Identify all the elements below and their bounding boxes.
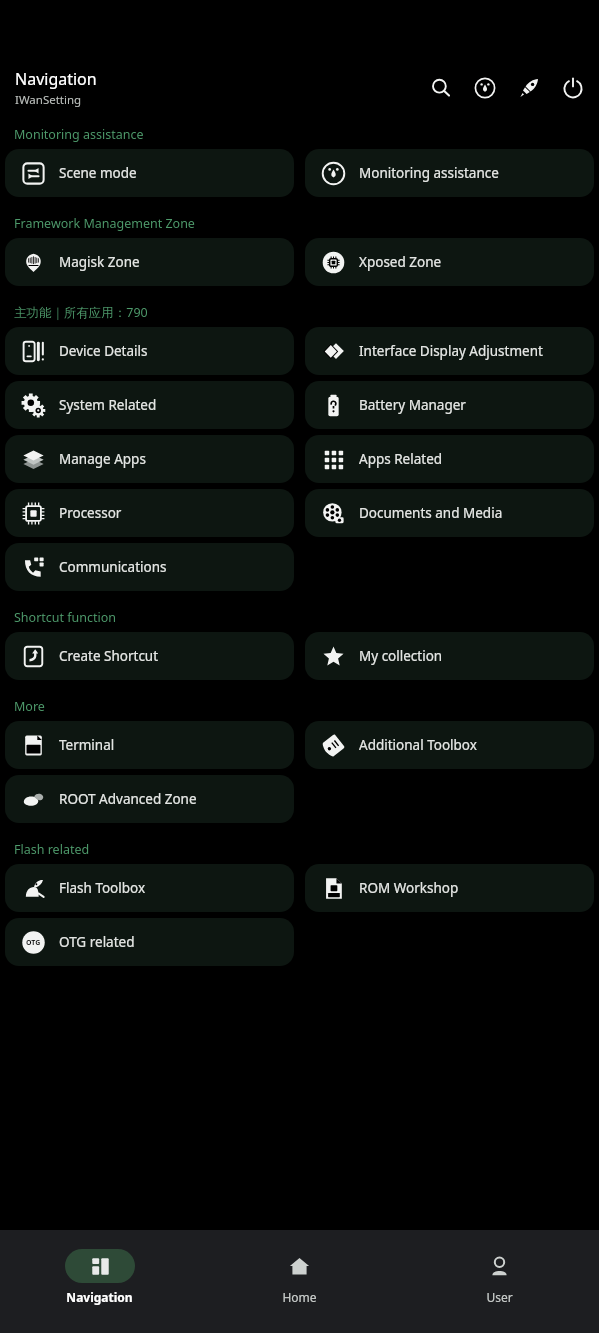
staticText: Monitoring assistance xyxy=(14,126,144,143)
staticText: Navigation xyxy=(66,1289,133,1305)
staticText: Battery Manager xyxy=(359,396,466,414)
staticText: Monitoring assistance xyxy=(359,164,499,182)
button[interactable]: ROM Workshop xyxy=(305,864,594,912)
button[interactable]: Magisk Zone xyxy=(5,238,294,286)
staticText: ROM Workshop xyxy=(359,879,459,897)
staticText: More xyxy=(14,698,45,715)
button[interactable]: Processor xyxy=(5,489,294,537)
button[interactable]: Performance xyxy=(463,66,507,110)
staticText: Manage Apps xyxy=(59,450,146,468)
staticText: Shortcut function xyxy=(14,609,117,626)
button[interactable]: Create Shortcut xyxy=(5,632,294,680)
button[interactable]: Flash Toolbox xyxy=(5,864,294,912)
staticText: IWanSetting xyxy=(15,92,82,108)
staticText: OTG xyxy=(26,938,41,948)
button[interactable]: Search xyxy=(419,66,463,110)
staticText: Communications xyxy=(59,558,167,576)
staticText: Apps Related xyxy=(359,450,443,468)
button[interactable]: System Related xyxy=(5,381,294,429)
button[interactable]: ROOT Advanced Zone xyxy=(5,775,294,823)
staticText: Device Details xyxy=(59,342,148,360)
staticText: ROOT Advanced Zone xyxy=(59,790,197,808)
button[interactable]: Xposed Zone xyxy=(305,238,594,286)
staticText: Home xyxy=(282,1289,317,1305)
button[interactable]: Scene mode xyxy=(5,149,294,197)
staticText: System Related xyxy=(59,396,157,414)
button[interactable]: Battery Manager xyxy=(305,381,594,429)
button[interactable]: My collection xyxy=(305,632,594,680)
button[interactable]: Interface Display Adjustment xyxy=(305,327,594,375)
staticText: Additional Toolbox xyxy=(359,736,477,754)
staticText: 主功能｜所有应用：790 xyxy=(14,304,148,321)
staticText: Documents and Media xyxy=(359,504,503,522)
button[interactable]: Boost xyxy=(507,66,551,110)
staticText: Scene mode xyxy=(59,164,137,182)
staticText: Framework Management Zone xyxy=(14,215,195,232)
staticText: Flash related xyxy=(14,841,90,858)
button[interactable]: Apps Related xyxy=(305,435,594,483)
staticText: Flash Toolbox xyxy=(59,879,146,897)
button[interactable]: Device Details xyxy=(5,327,294,375)
button[interactable]: User xyxy=(399,1230,599,1333)
button[interactable]: Home xyxy=(199,1230,399,1333)
staticText: Create Shortcut xyxy=(59,647,159,665)
button[interactable]: Power xyxy=(551,66,595,110)
button[interactable]: Manage Apps xyxy=(5,435,294,483)
staticText: My collection xyxy=(359,647,443,665)
staticText: Interface Display Adjustment xyxy=(359,342,543,360)
staticText: OTG related xyxy=(59,933,135,951)
staticText: Processor xyxy=(59,504,122,522)
staticText: Terminal xyxy=(59,736,115,754)
staticText: Navigation xyxy=(15,68,97,90)
button[interactable]: OTG xyxy=(5,918,294,966)
staticText: Xposed Zone xyxy=(359,253,442,271)
button[interactable]: Additional Toolbox xyxy=(305,721,594,769)
button[interactable]: Terminal xyxy=(5,721,294,769)
button[interactable]: Communications xyxy=(5,543,294,591)
button[interactable]: Monitoring assistance xyxy=(305,149,594,197)
button[interactable]: Navigation xyxy=(0,1230,199,1333)
staticText: Magisk Zone xyxy=(59,253,140,271)
staticText: User xyxy=(486,1289,513,1305)
button[interactable]: Documents and Media xyxy=(305,489,594,537)
